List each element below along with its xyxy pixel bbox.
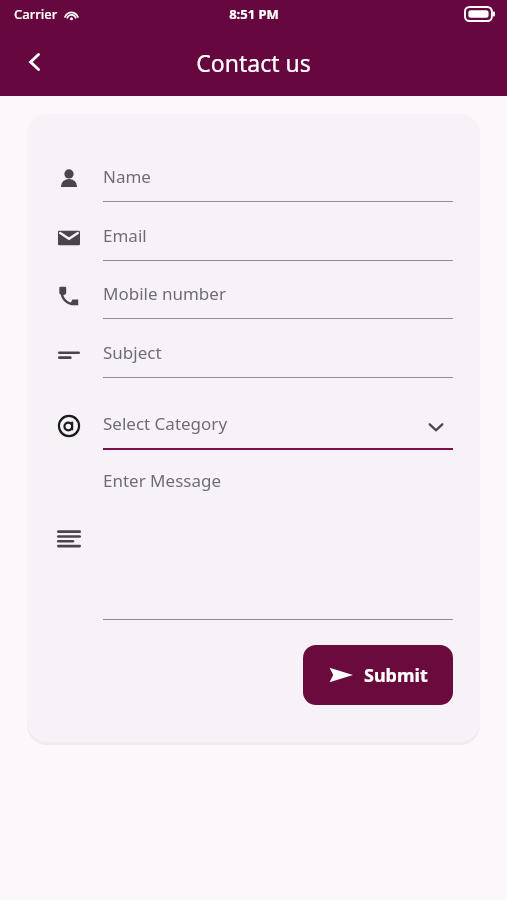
button[interactable]: Subject: [27, 331, 480, 383]
button[interactable]: Email: [27, 214, 480, 266]
staticText: Email: [103, 224, 147, 247]
staticText: Name: [103, 165, 151, 188]
staticText: Carrier: [14, 5, 58, 23]
staticText: Contact us: [196, 47, 311, 78]
button[interactable]: Name: [27, 155, 480, 207]
staticText: Enter Message: [103, 469, 221, 492]
button[interactable]: Mobile number: [27, 272, 480, 324]
staticText: Select Category: [103, 412, 228, 435]
staticText: 8:51 PM: [229, 5, 279, 23]
button[interactable]: Submit: [303, 645, 453, 705]
button[interactable]: Select Category: [27, 402, 480, 454]
staticText: Subject: [103, 341, 162, 364]
button[interactable]: Back: [8, 35, 62, 89]
staticText: Mobile number: [103, 282, 226, 305]
staticText: Submit: [364, 663, 428, 688]
